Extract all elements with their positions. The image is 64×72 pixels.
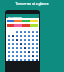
button[interactable] xyxy=(15,50,19,54)
button[interactable] xyxy=(23,54,27,58)
button[interactable] xyxy=(19,58,23,62)
button[interactable] xyxy=(31,46,35,50)
button[interactable] xyxy=(35,34,39,38)
button[interactable] xyxy=(7,42,11,46)
button[interactable] xyxy=(11,54,15,58)
button[interactable] xyxy=(7,58,11,62)
staticText: My Calendar xyxy=(8,15,23,18)
button[interactable] xyxy=(27,42,31,46)
button[interactable] xyxy=(19,38,23,42)
button[interactable] xyxy=(19,50,23,54)
button[interactable] xyxy=(27,50,31,54)
button[interactable] xyxy=(23,34,27,38)
button[interactable] xyxy=(11,50,15,54)
staticText: Tomorrow at a glance xyxy=(0,2,64,6)
button[interactable] xyxy=(23,30,27,34)
button[interactable] xyxy=(19,54,23,58)
button[interactable] xyxy=(27,30,31,34)
button[interactable] xyxy=(31,30,35,34)
button[interactable] xyxy=(19,34,23,38)
button[interactable] xyxy=(35,58,39,62)
button[interactable] xyxy=(35,46,39,50)
button[interactable] xyxy=(31,34,35,38)
button[interactable] xyxy=(31,42,35,46)
button[interactable] xyxy=(15,42,19,46)
button[interactable] xyxy=(11,46,15,50)
button[interactable] xyxy=(35,50,39,54)
button[interactable] xyxy=(11,42,15,46)
button[interactable] xyxy=(31,54,35,58)
button[interactable] xyxy=(15,46,19,50)
button[interactable] xyxy=(35,38,39,42)
button[interactable] xyxy=(15,30,19,34)
button[interactable] xyxy=(15,58,19,62)
button[interactable] xyxy=(7,38,11,42)
button[interactable] xyxy=(19,30,23,34)
button[interactable] xyxy=(7,50,11,54)
button[interactable] xyxy=(31,50,35,54)
button[interactable] xyxy=(19,42,23,46)
button[interactable] xyxy=(31,38,35,42)
button[interactable] xyxy=(35,42,39,46)
button[interactable] xyxy=(35,54,39,58)
button[interactable] xyxy=(19,46,23,50)
button[interactable] xyxy=(7,54,11,58)
button[interactable] xyxy=(23,38,27,42)
button[interactable] xyxy=(23,42,27,46)
button[interactable] xyxy=(27,58,31,62)
button[interactable]: My Calendar xyxy=(6,14,39,18)
button[interactable] xyxy=(11,38,15,42)
button[interactable] xyxy=(11,34,15,38)
button[interactable] xyxy=(15,34,19,38)
button[interactable] xyxy=(7,34,11,38)
button[interactable] xyxy=(7,46,11,50)
button[interactable] xyxy=(15,54,19,58)
button[interactable] xyxy=(23,58,27,62)
button[interactable] xyxy=(27,46,31,50)
button[interactable] xyxy=(35,30,39,34)
button[interactable] xyxy=(31,58,35,62)
button[interactable] xyxy=(27,34,31,38)
button[interactable] xyxy=(15,38,19,42)
button[interactable] xyxy=(11,58,15,62)
button[interactable] xyxy=(27,38,31,42)
button[interactable] xyxy=(23,50,27,54)
button[interactable] xyxy=(23,46,27,50)
button[interactable] xyxy=(27,54,31,58)
